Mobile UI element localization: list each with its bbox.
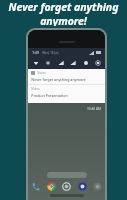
button[interactable]: Notes (28, 69, 105, 84)
staticText: Wed, 18 Jan (42, 51, 59, 55)
staticText: Product Presentation (31, 93, 68, 98)
button[interactable]: Notes (28, 85, 105, 100)
staticText: 10:46 AM (87, 107, 101, 111)
button[interactable]: Mobile data (56, 58, 65, 67)
staticText: Never forget anything anymore (31, 77, 86, 82)
button[interactable]: Play Store (77, 181, 88, 192)
button[interactable]: Settings (93, 58, 102, 67)
button[interactable]: Chrome (46, 181, 57, 192)
button[interactable]: Phone (30, 181, 41, 192)
button[interactable]: Bluetooth (43, 58, 52, 67)
staticText: Notes (31, 87, 40, 91)
staticText: Notes (37, 71, 46, 75)
staticText: Never forget anything anymore! (0, 0, 127, 26)
button[interactable]: Signal (68, 58, 77, 67)
staticText: 7:49 (32, 50, 39, 55)
button[interactable]: Brightness (81, 58, 90, 67)
button[interactable]: Apps (92, 181, 103, 192)
button[interactable]: Search (47, 172, 87, 178)
button[interactable]: Wi-Fi (31, 58, 40, 67)
button[interactable]: Camera (61, 181, 72, 192)
